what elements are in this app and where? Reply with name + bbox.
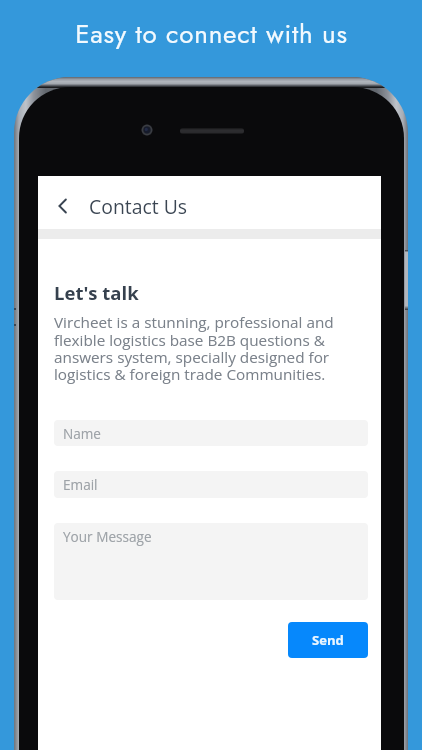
staticText: Easy to connect with us <box>75 15 348 53</box>
staticText: Email <box>63 475 98 494</box>
button[interactable]: Name <box>54 420 368 446</box>
staticText: Your Message <box>63 527 152 546</box>
staticText: Let's talk <box>54 280 139 305</box>
staticText: Send <box>312 631 344 649</box>
staticText: Vircheet is a stunning, professional and… <box>54 312 368 384</box>
button[interactable]: Email <box>54 471 368 498</box>
staticText: Name <box>63 424 102 443</box>
button[interactable]: Your Message <box>54 523 368 600</box>
button[interactable]: Send <box>288 622 368 658</box>
staticText: Contact Us <box>89 193 188 219</box>
button[interactable]: Back <box>46 189 80 223</box>
